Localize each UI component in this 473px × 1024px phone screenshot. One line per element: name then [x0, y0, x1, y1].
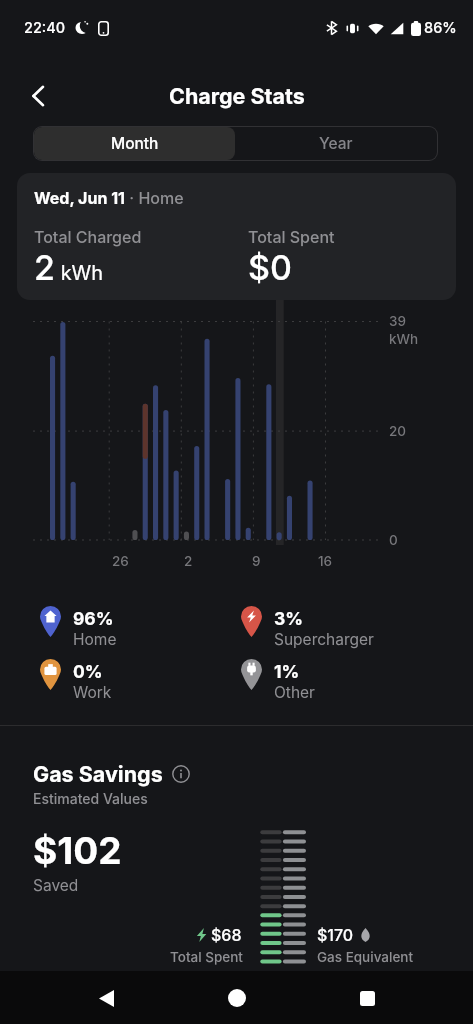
staticText: Year [319, 134, 353, 153]
staticText: 96% [73, 608, 114, 629]
button[interactable]: Info [172, 765, 190, 783]
staticText: Month [111, 134, 159, 153]
button[interactable]: Home [213, 974, 261, 1022]
staticText: 0 [389, 532, 398, 548]
staticText: 39 [389, 313, 406, 329]
button[interactable]: Back [20, 78, 56, 114]
staticText: 9 [252, 553, 261, 569]
button[interactable]: Wed, Jun 11 [17, 173, 456, 300]
staticText: Total Spent [170, 949, 243, 965]
staticText: Supercharger [274, 630, 374, 649]
staticText: Saved [33, 876, 79, 895]
staticText: Wed, Jun 11 [34, 188, 125, 207]
staticText: kWh [55, 261, 104, 285]
staticText: 86% [424, 19, 457, 37]
staticText: 2 [34, 247, 55, 288]
staticText: 22:40 [24, 19, 66, 37]
staticText: Other [274, 683, 315, 702]
staticText: 16 [318, 553, 333, 569]
staticText: Total Spent [248, 227, 335, 246]
staticText: 1% [274, 661, 300, 682]
staticText: $102 [33, 828, 122, 873]
staticText: Work [73, 683, 112, 702]
button[interactable]: Month [34, 127, 235, 160]
staticText: 0% [73, 661, 103, 682]
staticText: 2 [184, 553, 193, 569]
button[interactable]: Recent apps [343, 974, 391, 1022]
staticText: Home [73, 630, 117, 649]
staticText: Total Charged [34, 227, 142, 246]
staticText: 3% [274, 608, 304, 629]
staticText: $170 [317, 925, 354, 944]
button[interactable]: 0% [40, 659, 112, 700]
staticText: Gas Equivalent [317, 949, 414, 965]
button[interactable]: 96% [40, 606, 117, 647]
staticText: 26 [112, 553, 129, 569]
button[interactable]: Back [82, 974, 130, 1022]
button[interactable]: 1% [241, 659, 315, 700]
staticText: · Home [125, 188, 184, 207]
staticText: Gas Savings [33, 761, 163, 787]
button[interactable]: Year [235, 127, 437, 160]
staticText: $68 [211, 925, 242, 944]
staticText: Estimated Values [33, 790, 148, 807]
staticText: kWh [389, 331, 419, 347]
button[interactable]: 3% [241, 606, 374, 647]
staticText: $0 [248, 247, 292, 288]
staticText: 20 [389, 423, 407, 439]
staticText: Charge Stats [169, 83, 305, 109]
